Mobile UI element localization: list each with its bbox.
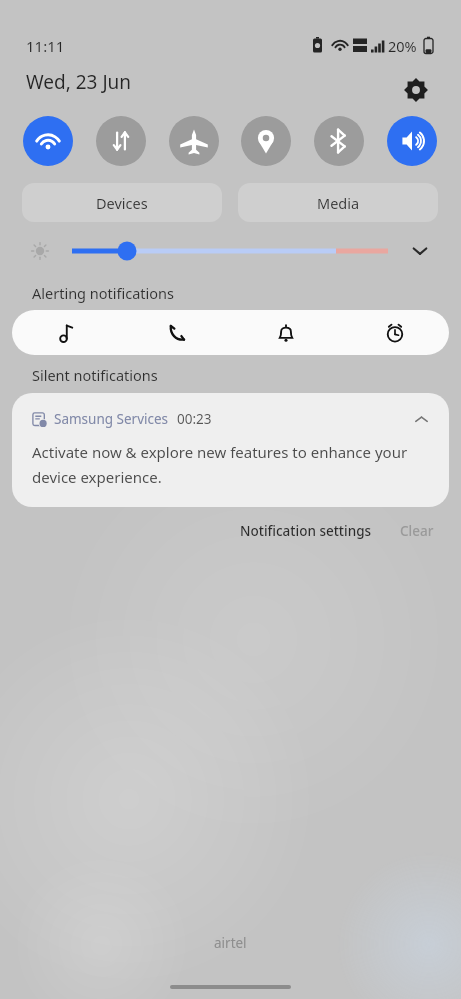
button[interactable]: Samsung Services — [12, 393, 449, 507]
button[interactable]: Expand brightness — [402, 236, 438, 266]
staticText: Notification settings — [240, 522, 372, 540]
staticText: airtel — [214, 934, 247, 952]
button[interactable]: Notification settings — [240, 522, 372, 540]
button[interactable]: Music notification — [12, 310, 122, 355]
staticText: Alerting notifications — [32, 283, 174, 303]
staticText: Devices — [96, 193, 148, 213]
button[interactable]: Mobile data — [96, 116, 146, 166]
staticText: Media — [317, 193, 360, 213]
button[interactable]: Call notification — [122, 310, 231, 355]
staticText: 20% — [388, 36, 417, 56]
button[interactable]: Volume — [387, 116, 437, 166]
button[interactable]: Notification — [231, 310, 340, 355]
button[interactable]: Clear — [400, 522, 434, 540]
button[interactable]: Music notification — [12, 310, 449, 355]
button[interactable]: Airplane mode — [169, 116, 219, 166]
button[interactable]: Collapse — [407, 405, 435, 433]
button[interactable]: Alarm — [340, 310, 449, 355]
button[interactable]: Bluetooth — [314, 116, 364, 166]
button[interactable]: Settings — [396, 70, 436, 110]
staticText: 11:11 — [26, 36, 65, 56]
staticText: Clear — [400, 522, 434, 540]
staticText: 00:23 — [177, 410, 212, 428]
staticText: Activate now & explore new features to e… — [32, 442, 415, 487]
button[interactable]: Location — [241, 116, 291, 166]
button[interactable]: Wi-Fi — [23, 116, 73, 166]
button[interactable]: Devices — [22, 183, 222, 222]
staticText: Silent notifications — [32, 365, 158, 385]
staticText: Samsung Services — [54, 410, 169, 428]
staticText: Wed, 23 Jun — [26, 69, 132, 95]
button[interactable]: Media — [238, 183, 438, 222]
